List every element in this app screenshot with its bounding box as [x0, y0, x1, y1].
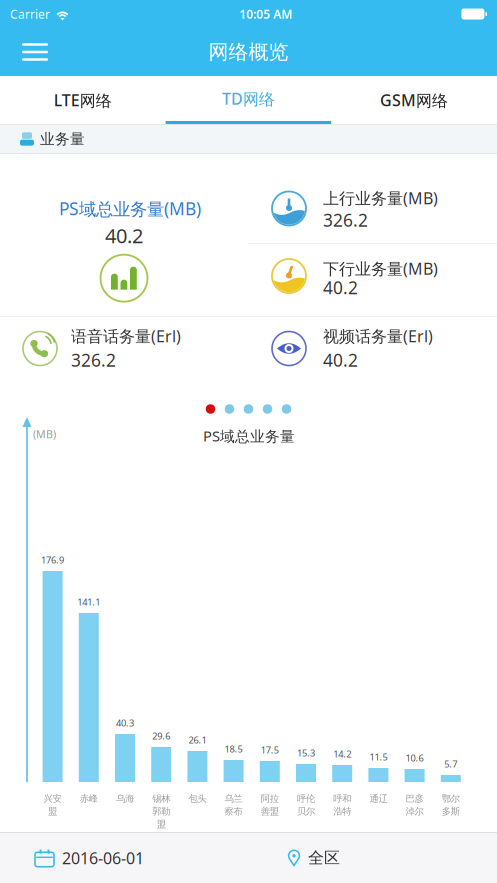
staticText: 呼和 [333, 793, 351, 804]
staticText: 29.6 [152, 730, 170, 742]
staticText: 10:05 AM [239, 6, 292, 22]
staticText: 18.5 [225, 743, 243, 755]
staticText: 多斯 [442, 806, 460, 817]
staticText: PS域总业务量(MB) [59, 197, 201, 220]
staticText: 盟 [157, 818, 166, 830]
staticText: 盟 [48, 806, 57, 817]
staticText: 巴彦 [406, 793, 424, 804]
staticText: 全区 [308, 848, 340, 868]
staticText: 包头 [188, 793, 206, 804]
staticText: 善盟 [261, 806, 279, 817]
button[interactable]: 2016-06-01 [0, 833, 144, 883]
staticText: 下行业务量(MB) [323, 258, 438, 279]
button[interactable]: TD网络 [166, 76, 331, 124]
staticText: LTE网络 [54, 89, 112, 111]
staticText: 5.7 [444, 758, 457, 770]
staticText: 贝尔 [297, 806, 315, 817]
staticText: TD网络 [222, 88, 275, 109]
staticText: 语音话务量(Erl) [71, 325, 181, 347]
button[interactable]: LTE网络 [0, 76, 166, 124]
staticText: GSM网络 [380, 89, 448, 111]
staticText: 鄂尔 [442, 793, 460, 804]
staticText: 15.3 [297, 747, 315, 759]
staticText: 26.1 [188, 734, 206, 746]
staticText: 10.6 [406, 752, 424, 764]
staticText: PS域总业务量 [203, 426, 295, 446]
staticText: 视频话务量(Erl) [323, 325, 433, 347]
staticText: 40.2 [323, 276, 358, 299]
staticText: 业务量 [40, 130, 85, 148]
staticText: 326.2 [71, 349, 116, 372]
staticText: 乌兰 [225, 793, 243, 804]
staticText: 郭勒 [152, 806, 170, 817]
staticText: 察布 [225, 806, 243, 817]
staticText: 176.9 [41, 554, 64, 566]
staticText: 浩特 [333, 806, 351, 817]
staticText: 兴安 [44, 793, 62, 804]
staticText: 40.2 [105, 222, 143, 249]
staticText: 326.2 [323, 209, 368, 232]
staticText: 乌海 [116, 793, 134, 804]
staticText: 呼伦 [297, 793, 315, 804]
button[interactable]: 全区 [287, 833, 340, 883]
staticText: 11.5 [369, 751, 387, 763]
staticText: 14.2 [333, 748, 351, 760]
staticText: 141.1 [77, 596, 100, 608]
staticText: 17.5 [261, 744, 279, 756]
staticText: (MB) [33, 427, 56, 441]
button[interactable]: Menu [0, 43, 48, 61]
staticText: 2016-06-01 [62, 847, 144, 869]
staticText: 赤峰 [80, 793, 98, 804]
staticText: 上行业务量(MB) [323, 187, 438, 209]
staticText: Carrier [10, 6, 50, 22]
staticText: 40.2 [323, 349, 358, 372]
staticText: 锡林 [152, 793, 170, 804]
staticText: 阿拉 [261, 793, 279, 804]
staticText: 40.3 [116, 717, 134, 729]
staticText: 通辽 [369, 793, 387, 804]
staticText: 淖尔 [406, 806, 424, 817]
button[interactable]: GSM网络 [331, 76, 497, 124]
staticText: 网络概览 [208, 40, 288, 64]
